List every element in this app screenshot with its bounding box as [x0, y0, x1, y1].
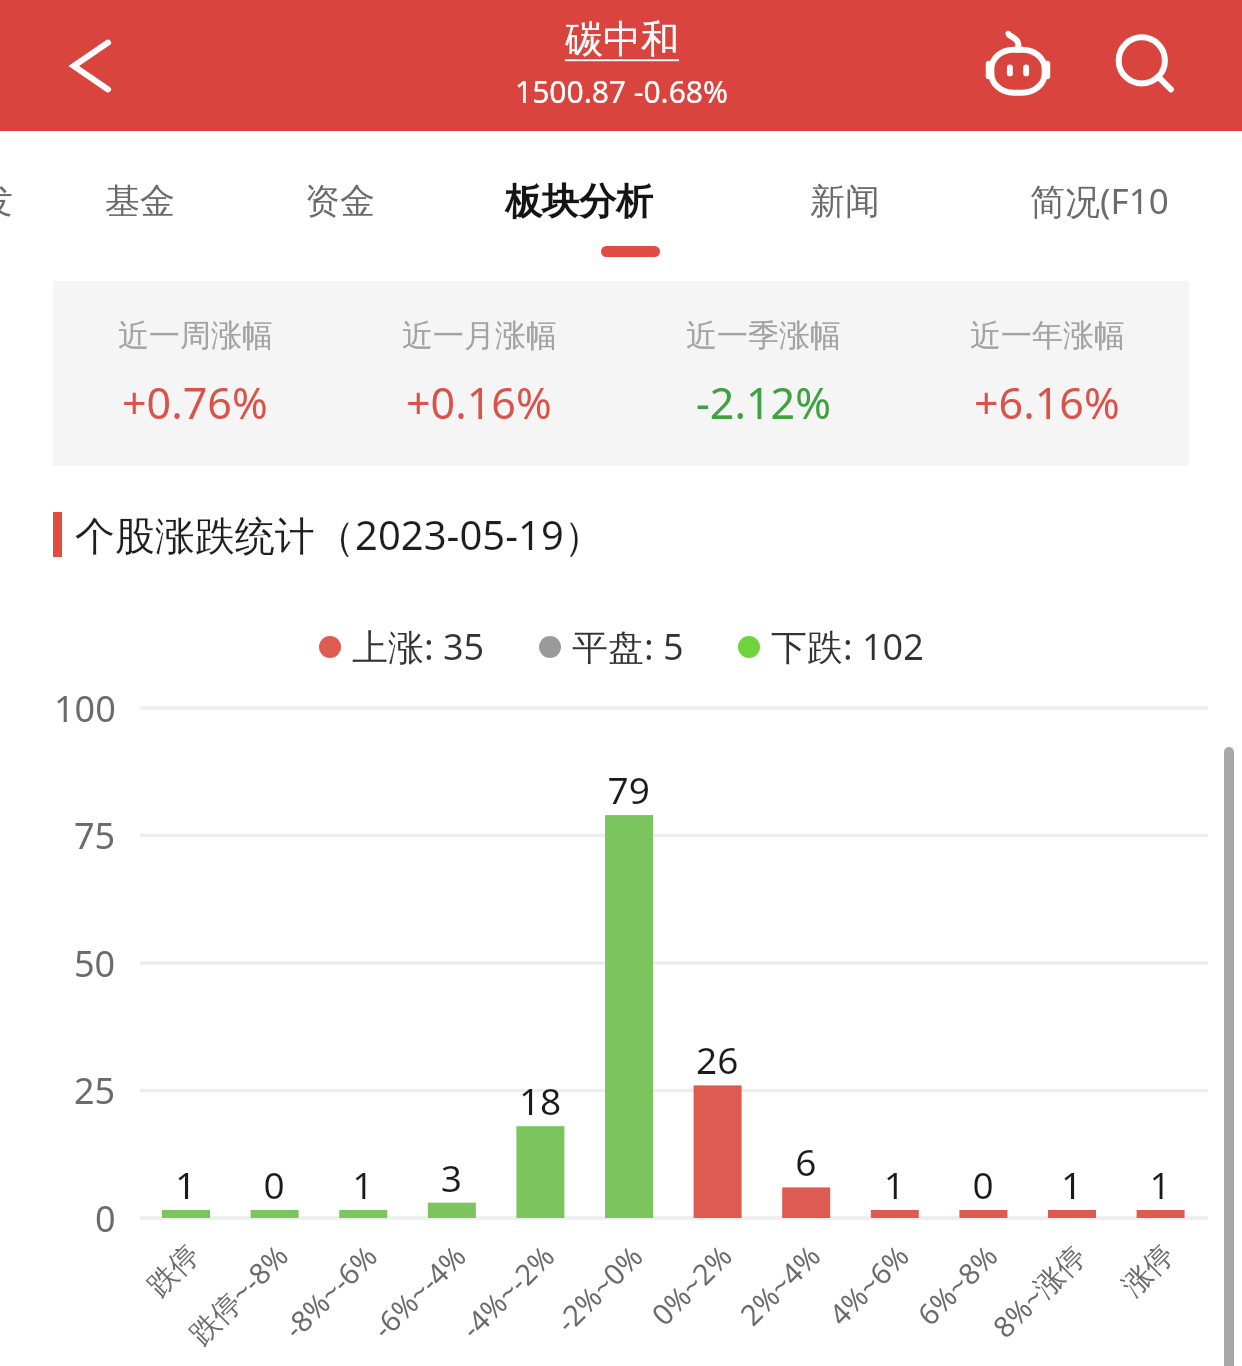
button[interactable]: 近一周涨幅 [53, 281, 337, 466]
staticText: 近一年涨幅 [970, 316, 1125, 355]
button[interactable]: 发 [0, 163, 13, 239]
staticText: 上涨: 35 [352, 622, 485, 671]
button[interactable]: Back [48, 27, 126, 105]
button[interactable]: 近一月涨幅 [337, 281, 621, 466]
staticText: 近一季涨幅 [686, 316, 841, 355]
button[interactable]: 近一季涨幅 [621, 281, 905, 466]
staticText: 1500.87 -0.68% [515, 71, 728, 112]
staticText: 下跌: 102 [771, 622, 924, 671]
button[interactable]: 新闻 [810, 163, 880, 239]
staticText: 近一周涨幅 [118, 316, 273, 355]
staticText: -2.12% [696, 373, 831, 432]
button[interactable]: 近一年涨幅 [905, 281, 1189, 466]
button[interactable]: Search [1100, 20, 1192, 112]
staticText: 新闻 [810, 179, 880, 223]
button[interactable]: AI assistant [972, 20, 1064, 112]
button[interactable]: 板块分析 [505, 163, 653, 239]
staticText: 板块分析 [505, 178, 653, 225]
staticText: 资金 [305, 179, 375, 223]
staticText: 近一月涨幅 [402, 316, 557, 355]
button[interactable]: 基金 [105, 163, 175, 239]
staticText: 平盘: 5 [572, 622, 684, 671]
staticText: 碳中和 [565, 15, 679, 63]
staticText: +0.76% [122, 373, 268, 432]
button[interactable]: 资金 [305, 163, 375, 239]
button[interactable]: 简况(F10 [1030, 163, 1169, 239]
staticText: 发 [0, 179, 13, 223]
staticText: 基金 [105, 179, 175, 223]
staticText: +0.16% [406, 373, 552, 432]
staticText: 个股涨跌统计（2023-05-19） [75, 507, 604, 562]
staticText: 简况(F10 [1030, 177, 1169, 225]
staticText: +6.16% [974, 373, 1120, 432]
